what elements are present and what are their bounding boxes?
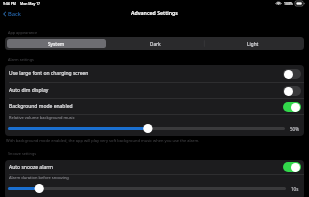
staticText: Auto snooze alarm (9, 164, 54, 171)
staticText: Background mode enabled (9, 103, 73, 110)
staticText: Back (8, 10, 21, 18)
staticText: Alarm settings (8, 57, 34, 62)
staticText: Alarm duration before snoozing (9, 175, 69, 180)
button[interactable]: Dark (106, 39, 204, 48)
other: Off (283, 86, 301, 96)
other: On (283, 162, 301, 172)
staticText: Light (247, 41, 259, 47)
button[interactable] (8, 123, 285, 134)
button[interactable]: Auto snooze alarm (5, 160, 304, 174)
staticText: Snooze settings (8, 151, 37, 156)
staticText: App appearance (8, 30, 38, 35)
staticText: Relative volume background music (9, 115, 75, 120)
staticText: System (48, 41, 65, 47)
staticText: 100% (284, 1, 293, 6)
staticText: Mon May 17 (20, 1, 41, 6)
button[interactable]: Auto dim display (5, 83, 304, 98)
staticText: Use large font on charging screen (9, 70, 89, 77)
staticText: Dark (150, 41, 161, 47)
staticText: 50% (290, 126, 299, 132)
staticText: Advanced Settings (131, 9, 178, 16)
staticText: Auto dim display (9, 87, 49, 94)
staticText: 9:04 PM (3, 1, 16, 6)
staticText: 10s (291, 186, 299, 192)
button[interactable] (8, 183, 286, 194)
button[interactable]: Background mode enabled (5, 99, 304, 114)
button[interactable]: Back (2, 9, 22, 19)
staticText: With background mode enabled, the app wi… (6, 138, 200, 143)
button[interactable]: Light (204, 39, 302, 48)
other: On (283, 102, 301, 112)
button[interactable]: System (7, 39, 106, 48)
button[interactable]: Use large font on charging screen (5, 65, 304, 82)
other: Off (283, 69, 301, 79)
